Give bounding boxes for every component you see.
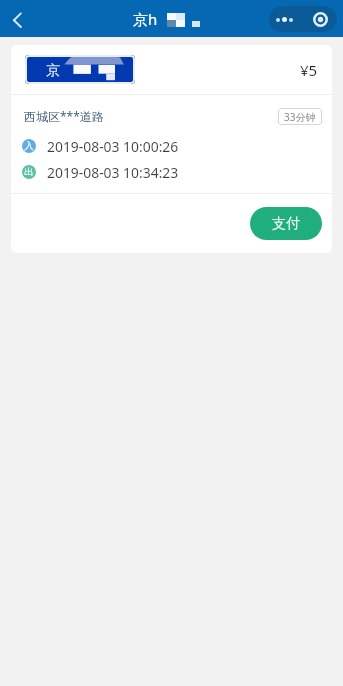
- staticText: 京: [46, 62, 60, 80]
- staticText: 2019-08-03 10:34:23: [47, 163, 179, 182]
- button[interactable]: Close mini program: [303, 6, 337, 32]
- staticText: 出: [24, 166, 34, 178]
- button[interactable]: Back: [0, 1, 36, 37]
- staticText: 33分钟: [284, 110, 316, 124]
- staticText: 京h: [133, 9, 158, 29]
- staticText: 支付: [272, 215, 300, 233]
- staticText: 2019-08-03 10:00:26: [47, 137, 179, 156]
- staticText: ¥5: [300, 60, 318, 80]
- staticText: 西城区***道路: [24, 108, 104, 124]
- button[interactable]: More options: [269, 6, 303, 32]
- staticText: 入: [24, 140, 34, 152]
- button[interactable]: 支付: [250, 207, 322, 240]
